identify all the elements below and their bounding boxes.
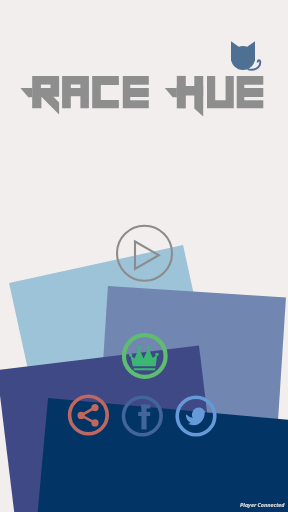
button[interactable]: Share [68, 395, 109, 436]
button[interactable]: Play [116, 225, 173, 282]
staticText: Player Connected [240, 501, 285, 508]
button[interactable]: Twitter [176, 396, 217, 437]
button[interactable]: Leaderboard [122, 333, 168, 379]
button[interactable]: Facebook [122, 396, 163, 437]
